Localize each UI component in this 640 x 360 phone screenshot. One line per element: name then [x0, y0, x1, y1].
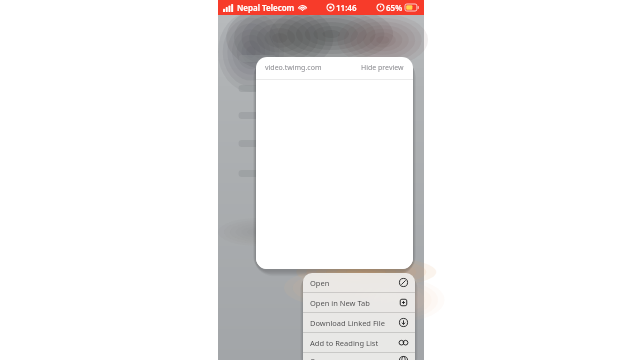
staticText: Nepal Telecom [237, 2, 295, 13]
button[interactable]: Hide preview [361, 63, 404, 73]
button[interactable]: Copy [303, 353, 415, 360]
staticText: 65% [386, 2, 403, 13]
staticText: 11:46 [336, 2, 357, 13]
button[interactable]: Add to Reading List [303, 333, 415, 352]
staticText: Open [310, 278, 330, 288]
other: Open [399, 278, 408, 287]
other: Add to Reading List [399, 338, 408, 347]
staticText: Copy [310, 356, 328, 360]
button[interactable]: Open in New Tab [303, 293, 415, 312]
button[interactable]: Download Linked File [303, 313, 415, 332]
staticText: Hide preview [361, 63, 404, 73]
other: Download Linked File [399, 318, 408, 327]
staticText: video.twimg.com [265, 63, 322, 73]
other: Open in New Tab [399, 298, 408, 307]
button[interactable]: Open [303, 273, 415, 292]
staticText: Open in New Tab [310, 298, 370, 308]
staticText: Download Linked File [310, 318, 385, 328]
staticText: Add to Reading List [310, 338, 379, 348]
other: Copy [399, 356, 408, 360]
